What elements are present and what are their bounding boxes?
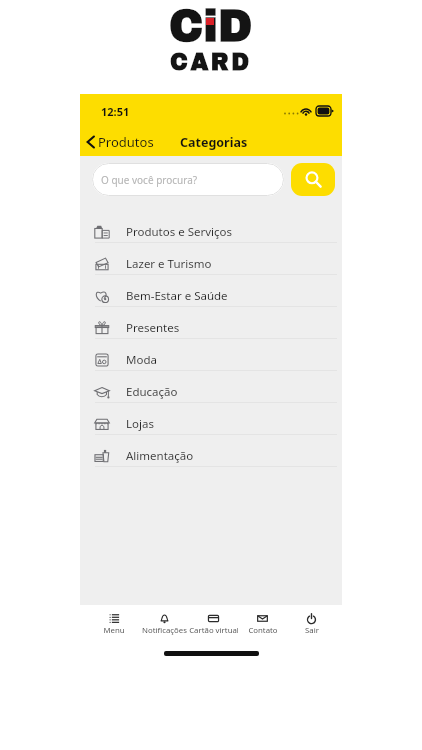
button[interactable]: Produtos e Serviços bbox=[80, 211, 342, 243]
button[interactable]: Sair bbox=[287, 605, 336, 636]
button[interactable]: Contato bbox=[238, 605, 287, 636]
button[interactable]: Bem-Estar e Saúde bbox=[80, 275, 342, 307]
staticText: Produtos bbox=[98, 133, 154, 151]
staticText: Cartão virtual bbox=[189, 625, 238, 636]
staticText: Lojas bbox=[126, 416, 154, 432]
staticText: Categorias bbox=[180, 134, 248, 151]
staticText: CARD bbox=[170, 50, 252, 75]
button[interactable]: Presentes bbox=[80, 307, 342, 339]
staticText: Moda bbox=[126, 352, 157, 368]
staticText: Contato bbox=[248, 625, 278, 636]
staticText: Produtos e Serviços bbox=[126, 224, 233, 240]
staticText: 12:51 bbox=[101, 104, 130, 119]
button[interactable]: Notificações bbox=[139, 605, 189, 636]
button[interactable]: Buscar bbox=[291, 163, 335, 196]
staticText: Lazer e Turismo bbox=[126, 256, 212, 272]
staticText: Bem-Estar e Saúde bbox=[126, 288, 228, 304]
staticText: O que você procura? bbox=[101, 173, 198, 187]
button[interactable]: Alimentação bbox=[80, 435, 342, 467]
staticText: Alimentação bbox=[126, 448, 194, 464]
button[interactable]: Educação bbox=[80, 371, 342, 403]
button[interactable]: Moda bbox=[80, 339, 342, 371]
staticText: Notificações bbox=[142, 625, 187, 636]
button[interactable]: Cartão virtual bbox=[189, 605, 238, 636]
staticText: Menu bbox=[103, 625, 125, 636]
staticText: Sair bbox=[305, 625, 319, 636]
button[interactable]: Menu bbox=[89, 605, 139, 636]
button[interactable]: Produtos bbox=[80, 129, 160, 155]
button[interactable]: O que você procura? bbox=[92, 163, 284, 196]
button[interactable]: Lojas bbox=[80, 403, 342, 435]
staticText: Presentes bbox=[126, 320, 180, 336]
staticText: Educação bbox=[126, 384, 178, 400]
button[interactable]: Lazer e Turismo bbox=[80, 243, 342, 275]
staticText: CiD bbox=[169, 2, 253, 50]
